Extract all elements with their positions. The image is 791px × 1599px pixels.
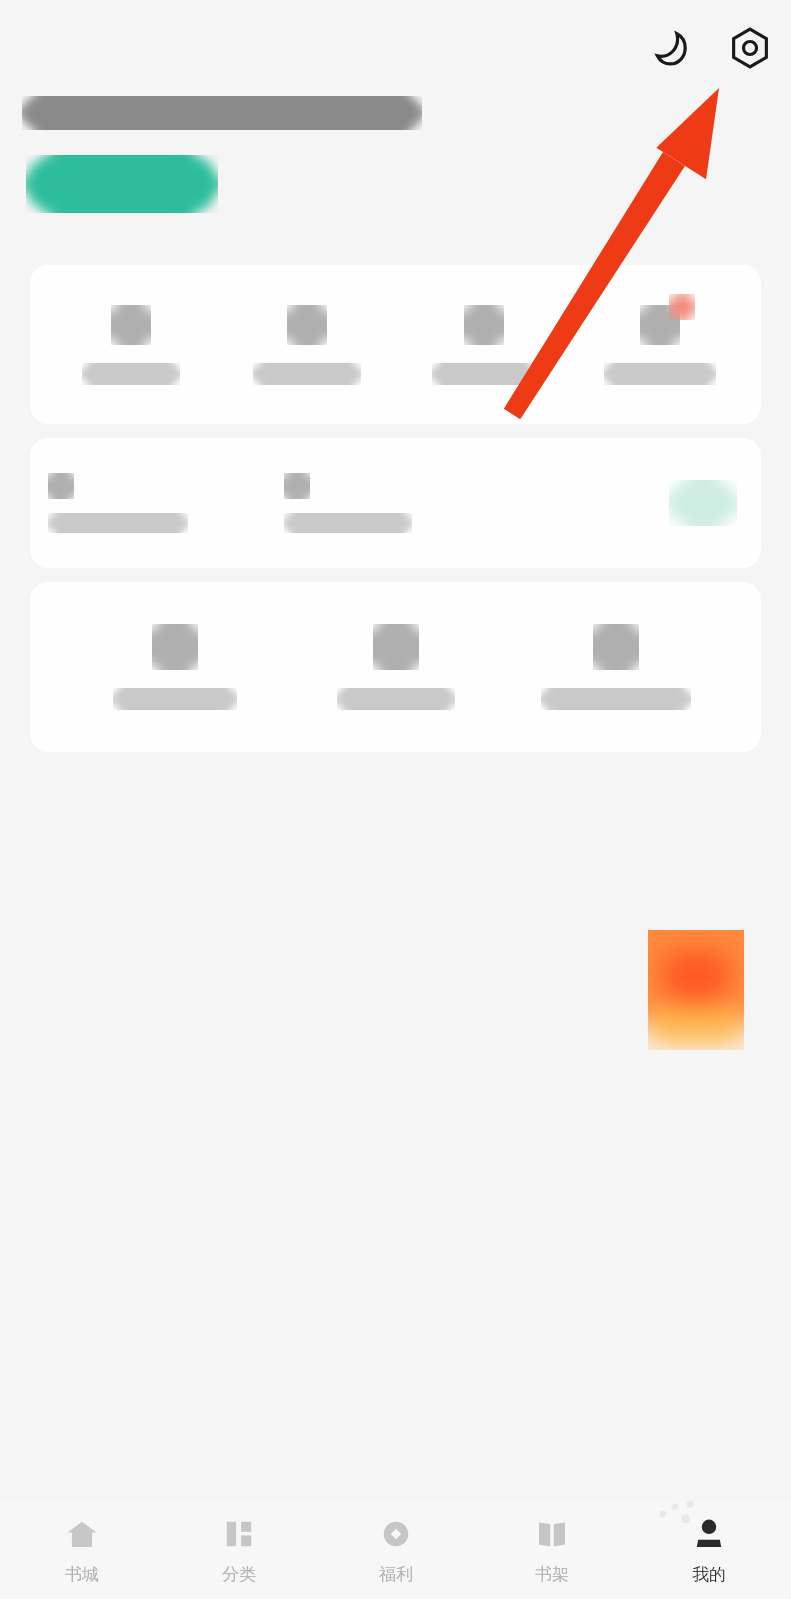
button[interactable] (669, 480, 737, 526)
button[interactable]: Menu item (541, 624, 691, 710)
button[interactable]: Entry (284, 473, 412, 533)
button[interactable]: Entry (48, 473, 188, 533)
button[interactable]: Menu item (100, 624, 250, 710)
staticText: 分类 (222, 1564, 256, 1585)
staticText: 书城 (65, 1564, 99, 1585)
button[interactable]: Menu item (56, 305, 206, 385)
button[interactable]: 书架 (477, 1502, 627, 1599)
button[interactable]: Night mode (643, 21, 697, 75)
button[interactable]: 书城 (7, 1502, 157, 1599)
button[interactable] (22, 151, 222, 217)
button[interactable]: Menu item (321, 624, 471, 710)
staticText: 福利 (379, 1564, 413, 1585)
button[interactable]: Menu item (409, 305, 559, 385)
button[interactable]: 福利 (321, 1502, 471, 1599)
staticText: 我的 (692, 1564, 726, 1585)
button[interactable]: 我的 (634, 1502, 784, 1599)
button[interactable]: Menu item (232, 305, 382, 385)
staticText: 书架 (535, 1564, 569, 1585)
button[interactable]: Menu item (585, 305, 735, 385)
button[interactable]: Settings (723, 21, 777, 75)
button[interactable]: 分类 (164, 1502, 314, 1599)
button[interactable]: Promotion (648, 930, 744, 1050)
